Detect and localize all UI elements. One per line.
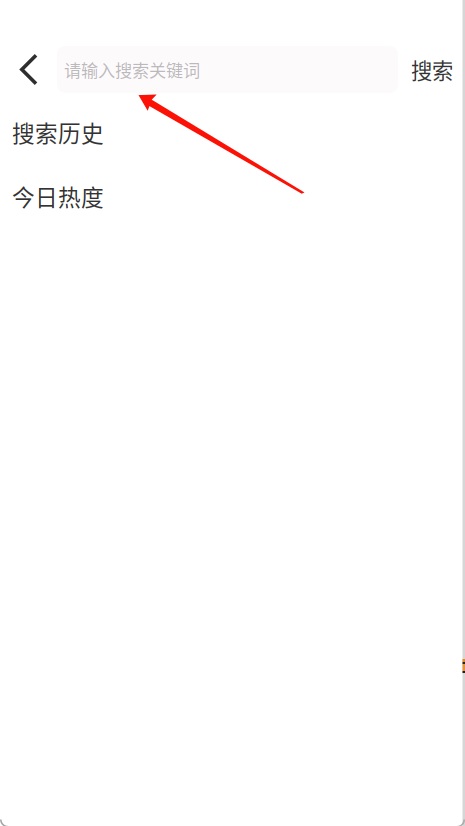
button[interactable]: Back [9, 46, 49, 93]
button[interactable]: 搜索历史 [0, 110, 444, 154]
staticText: 请输入搜索关键词 [64, 57, 200, 82]
staticText: 搜索 [411, 54, 453, 85]
button[interactable]: 今日热度 [0, 174, 444, 218]
button[interactable]: 搜索 [401, 46, 463, 93]
staticText: 搜索历史 [12, 116, 104, 148]
staticText: 今日热度 [12, 180, 104, 212]
button[interactable]: 请输入搜索关键词 [57, 46, 398, 93]
